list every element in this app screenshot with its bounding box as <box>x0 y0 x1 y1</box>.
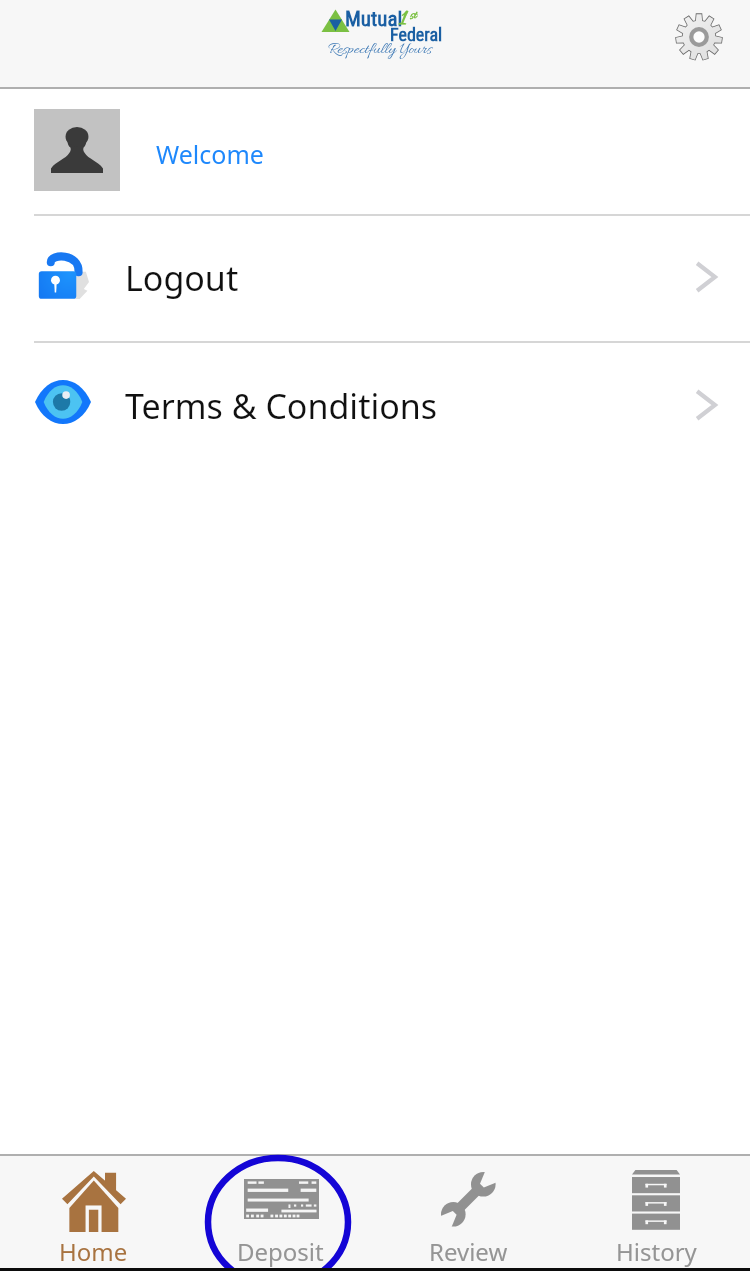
button[interactable]: History <box>562 1156 750 1271</box>
button[interactable]: Home <box>0 1156 187 1271</box>
staticText: Review <box>429 1235 508 1268</box>
staticText: Home <box>59 1235 128 1268</box>
staticText: Mutual <box>345 7 403 32</box>
staticText: Deposit <box>237 1235 324 1268</box>
button[interactable]: Terms & Conditions <box>0 343 750 470</box>
staticText: Respectfully Yours <box>328 39 432 60</box>
staticText: st <box>410 8 417 24</box>
staticText: Logout <box>125 255 239 301</box>
button[interactable]: Review <box>374 1156 562 1271</box>
staticText: History <box>616 1235 697 1268</box>
button[interactable]: Settings <box>671 9 726 64</box>
button[interactable]: Deposit <box>187 1156 374 1271</box>
button[interactable]: Welcome <box>0 89 750 214</box>
button[interactable]: Logout <box>0 216 750 341</box>
staticText: Terms & Conditions <box>125 383 438 429</box>
staticText: Federal <box>390 24 443 45</box>
staticText: Welcome <box>156 137 264 171</box>
staticText: 1 <box>399 5 407 35</box>
